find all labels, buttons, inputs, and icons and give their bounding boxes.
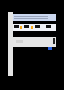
button[interactable] <box>13 14 56 21</box>
button[interactable] <box>13 24 23 31</box>
button[interactable] <box>45 24 56 31</box>
button[interactable] <box>34 24 45 31</box>
button[interactable] <box>23 24 34 31</box>
